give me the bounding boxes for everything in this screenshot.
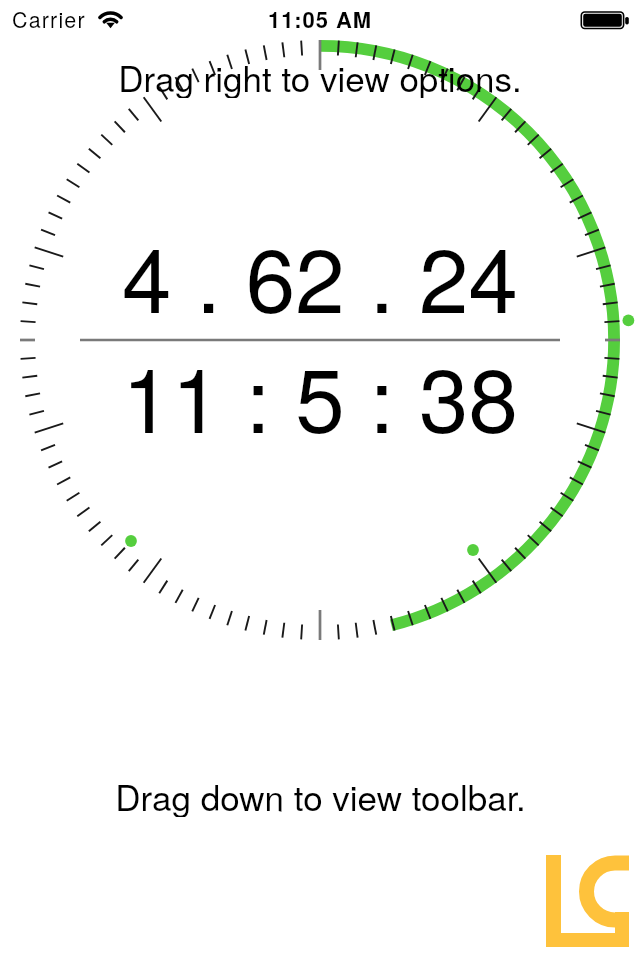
staticText: Carrier	[12, 3, 86, 34]
staticText: Drag right to view options.	[118, 52, 522, 98]
staticText: 11 : 5 : 38	[0, 331, 640, 458]
button[interactable]: Lap timer dial	[10, 30, 630, 650]
staticText: Drag down to view toolbar.	[115, 771, 526, 817]
staticText: 11:05 AM	[0, 3, 640, 35]
button[interactable]: Drag right to view options.	[0, 52, 640, 98]
staticText: 4 . 62 . 24	[0, 211, 640, 338]
button[interactable]: Drag down to view toolbar.	[0, 771, 640, 817]
button[interactable]: LiveCode	[546, 855, 630, 947]
